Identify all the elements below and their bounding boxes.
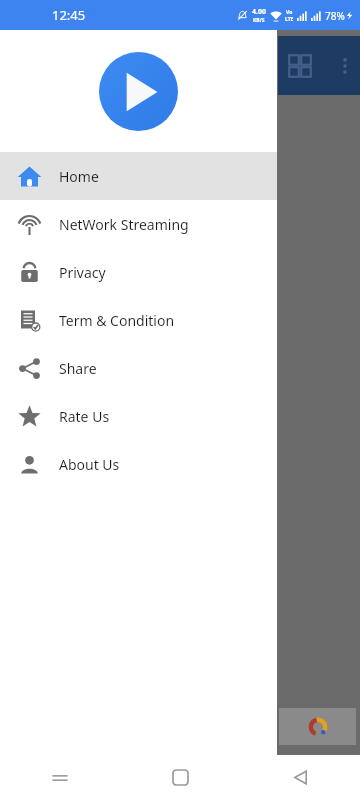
staticText: 12:45 xyxy=(52,6,86,24)
button[interactable]: NetWork Streaming xyxy=(0,200,277,248)
button[interactable]: About Us xyxy=(0,440,277,488)
staticText: Vo xyxy=(286,9,293,16)
button[interactable]: Term & Condition xyxy=(0,296,277,344)
button[interactable]: Home xyxy=(0,152,277,200)
button[interactable]: App logo xyxy=(99,52,178,131)
button[interactable]: Home xyxy=(120,755,240,800)
staticText: NetWork Streaming xyxy=(59,215,189,234)
button[interactable]: Back xyxy=(240,755,360,800)
button[interactable]: Rate Us xyxy=(0,392,277,440)
button[interactable]: Apps grid xyxy=(288,54,312,78)
staticText: Share xyxy=(59,359,97,378)
staticText: Home xyxy=(59,167,99,186)
staticText: 4.00 xyxy=(252,7,266,17)
staticText: KB/S xyxy=(253,17,265,24)
staticText: Term & Condition xyxy=(59,311,175,330)
staticText: LTE xyxy=(285,16,294,23)
button[interactable]: Share xyxy=(0,344,277,392)
staticText: 78% xyxy=(325,9,345,23)
button[interactable]: Recent apps xyxy=(0,755,120,800)
staticText: About Us xyxy=(59,455,120,474)
staticText: Rate Us xyxy=(59,407,110,426)
button[interactable]: Privacy xyxy=(0,248,277,296)
staticText: Privacy xyxy=(59,263,106,282)
button[interactable]: More options xyxy=(333,54,357,78)
